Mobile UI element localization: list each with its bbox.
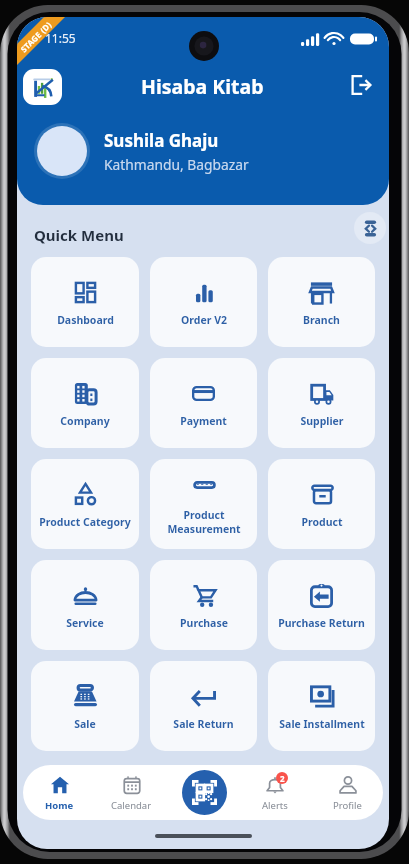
button[interactable]: Scan code <box>354 212 386 244</box>
staticText: 2 <box>280 773 285 784</box>
staticText: Sale Return <box>173 717 234 731</box>
button[interactable]: 2 <box>239 765 311 820</box>
button[interactable]: Hisaba Kitab logo <box>23 69 62 105</box>
staticText: Sale <box>74 717 96 731</box>
staticText: Branch <box>303 313 340 327</box>
staticText: Home <box>45 799 74 812</box>
staticText: Product Category <box>39 515 131 529</box>
button[interactable]: Calendar <box>95 765 167 820</box>
button[interactable]: Product Measurement <box>150 459 257 549</box>
button[interactable]: Sale <box>31 661 139 751</box>
button[interactable]: Branch <box>268 257 375 347</box>
staticText: Quick Menu <box>34 225 124 245</box>
staticText: 11:55 <box>45 30 76 46</box>
button[interactable]: Product Category <box>31 459 139 549</box>
button[interactable]: Purchase <box>150 560 257 650</box>
staticText: Purchase Return <box>278 616 365 630</box>
staticText: Payment <box>180 414 227 428</box>
button[interactable]: Scan QR code <box>182 770 227 815</box>
button[interactable]: Profile <box>311 765 383 820</box>
button[interactable]: Supplier <box>268 358 375 448</box>
button[interactable]: Sale Return <box>150 661 257 751</box>
staticText: Order V2 <box>181 313 227 327</box>
staticText: Sale Installment <box>279 717 365 731</box>
button[interactable]: Logout <box>342 66 380 104</box>
staticText: Service <box>66 616 104 630</box>
button[interactable]: Service <box>31 560 139 650</box>
staticText: Company <box>60 414 110 428</box>
staticText: Purchase <box>180 616 228 630</box>
staticText: Calendar <box>111 799 152 812</box>
button[interactable]: Sale Installment <box>268 661 375 751</box>
staticText: Supplier <box>300 414 344 428</box>
button[interactable]: Company <box>31 358 139 448</box>
button[interactable]: Purchase Return <box>268 560 375 650</box>
staticText: Alerts <box>262 799 288 812</box>
staticText: Product <box>301 515 343 529</box>
button[interactable]: Home <box>23 765 95 820</box>
staticText: Product Measurement <box>167 508 241 536</box>
button[interactable]: Dashboard <box>31 257 139 347</box>
staticText: Hisaba Kitab <box>141 73 264 100</box>
staticText: STAGE (D) <box>18 18 54 55</box>
staticText: Dashboard <box>57 313 114 327</box>
staticText: Kathmandu, Bagbazar <box>104 155 249 174</box>
button[interactable]: Product <box>268 459 375 549</box>
staticText: Sushila Ghaju <box>104 129 219 152</box>
staticText: Profile <box>333 799 362 812</box>
button[interactable]: Payment <box>150 358 257 448</box>
button[interactable]: Order V2 <box>150 257 257 347</box>
